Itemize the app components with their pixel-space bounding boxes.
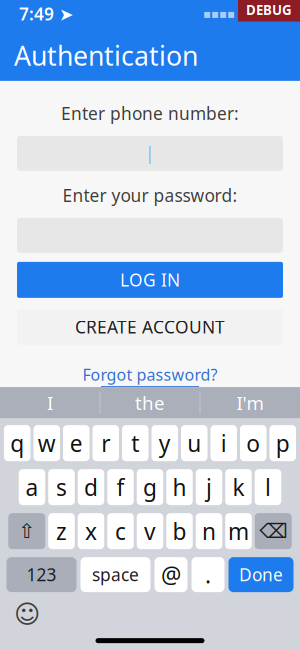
button[interactable]: w xyxy=(33,425,60,461)
button[interactable]: d xyxy=(78,469,104,505)
staticText: u xyxy=(187,428,201,458)
button[interactable]: v xyxy=(137,513,163,549)
button[interactable]: u xyxy=(181,425,207,461)
staticText: l xyxy=(265,472,271,502)
button[interactable]: LOG IN xyxy=(17,262,283,298)
button[interactable]: a xyxy=(19,469,45,505)
staticText: Enter your password: xyxy=(62,184,237,207)
staticText: f xyxy=(116,472,124,502)
button[interactable]: k xyxy=(225,469,252,505)
staticText: k xyxy=(232,472,244,502)
staticText: 7:49 ➤ xyxy=(19,2,74,25)
staticText: c xyxy=(115,516,126,546)
staticText: g xyxy=(143,472,157,502)
button[interactable]: m xyxy=(225,513,252,549)
staticText: s xyxy=(56,472,67,502)
staticText: ⇧ xyxy=(18,520,35,542)
staticText: ⌫ xyxy=(259,520,287,542)
button[interactable]: Forgot password? xyxy=(82,364,217,387)
staticText: the xyxy=(135,390,165,415)
button[interactable]: l xyxy=(255,469,281,505)
button[interactable]: i xyxy=(210,425,237,461)
staticText: ▪▪▪▪ xyxy=(203,7,235,21)
staticText: space xyxy=(92,563,139,586)
button[interactable]: Done xyxy=(228,557,293,592)
button[interactable]: j xyxy=(196,469,222,505)
button[interactable]: . xyxy=(191,557,224,592)
staticText: ☺ xyxy=(14,600,40,629)
staticText: ᯤ xyxy=(235,3,254,24)
button[interactable]: r xyxy=(92,425,119,461)
button[interactable]: CREATE ACCOUNT xyxy=(17,309,283,345)
staticText: j xyxy=(206,472,212,502)
staticText: t xyxy=(131,428,139,458)
staticText: DEBUG xyxy=(246,1,292,19)
button[interactable]: z xyxy=(48,513,75,549)
button[interactable]: p xyxy=(269,425,296,461)
button[interactable]: c xyxy=(107,513,134,549)
button[interactable]: h xyxy=(166,469,193,505)
staticText: m xyxy=(228,516,249,546)
button[interactable]: Emoji keyboard xyxy=(12,601,42,627)
button[interactable]: y xyxy=(151,425,178,461)
button[interactable]: I xyxy=(0,387,99,418)
staticText: z xyxy=(56,516,67,546)
staticText: 123 xyxy=(26,563,56,586)
button[interactable]: Delete xyxy=(255,513,292,549)
staticText: e xyxy=(70,428,83,458)
button[interactable]: space xyxy=(80,557,150,592)
staticText: i xyxy=(221,428,227,458)
staticText: r xyxy=(101,428,110,458)
staticText: I xyxy=(47,390,53,415)
staticText: d xyxy=(84,472,98,502)
staticText: Authentication xyxy=(14,38,198,73)
staticText: h xyxy=(172,472,186,502)
staticText: v xyxy=(144,516,156,546)
staticText: Forgot password? xyxy=(82,364,217,385)
staticText: CREATE ACCOUNT xyxy=(75,315,225,338)
button[interactable]: s xyxy=(48,469,75,505)
button[interactable]: t xyxy=(122,425,148,461)
staticText: o xyxy=(246,428,260,458)
staticText: n xyxy=(202,516,216,546)
button[interactable]: Shift xyxy=(8,513,45,549)
staticText: LOG IN xyxy=(120,268,180,291)
button[interactable]: 123 xyxy=(6,557,76,592)
staticText: y xyxy=(159,428,171,458)
button[interactable]: e xyxy=(63,425,89,461)
staticText: b xyxy=(172,516,186,546)
staticText: q xyxy=(10,428,24,458)
staticText: . xyxy=(205,560,211,590)
button[interactable]: f xyxy=(107,469,134,505)
staticText: a xyxy=(25,472,38,502)
staticText: Enter phone number: xyxy=(61,102,239,125)
staticText: | xyxy=(145,142,155,165)
button[interactable]: @ xyxy=(154,557,187,592)
button[interactable]: b xyxy=(166,513,193,549)
button[interactable]: I'm xyxy=(200,387,299,418)
staticText: p xyxy=(276,428,290,458)
button[interactable]: n xyxy=(196,513,222,549)
button[interactable]: o xyxy=(240,425,266,461)
button[interactable]: the xyxy=(100,387,199,418)
button[interactable]: x xyxy=(78,513,104,549)
button[interactable]: g xyxy=(137,469,163,505)
staticText: @ xyxy=(161,560,181,590)
button[interactable]: q xyxy=(4,425,30,461)
staticText: I'm xyxy=(236,390,263,415)
staticText: Done xyxy=(239,563,283,586)
staticText: w xyxy=(38,428,56,458)
staticText: x xyxy=(85,516,97,546)
